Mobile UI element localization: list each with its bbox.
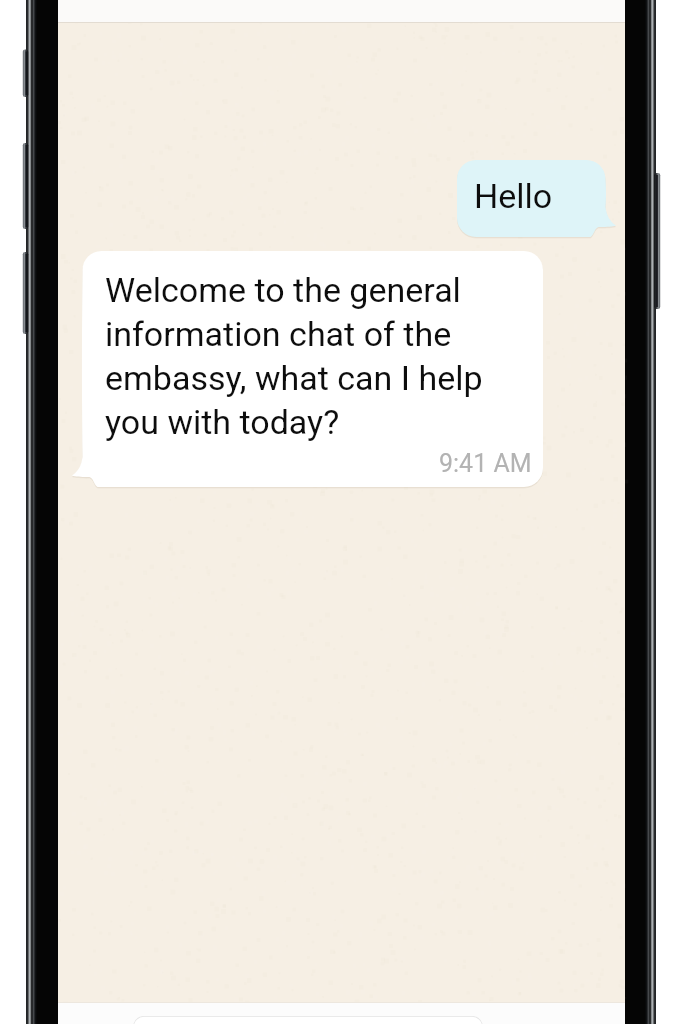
button[interactable]: Hello <box>457 160 616 237</box>
staticText: Hello <box>474 176 553 216</box>
button[interactable]: Welcome to the general information chat … <box>72 251 543 487</box>
staticText: Welcome to the general information chat … <box>105 270 487 442</box>
staticText: 9:41 AM <box>439 449 532 478</box>
button[interactable]: Message <box>133 1016 483 1024</box>
